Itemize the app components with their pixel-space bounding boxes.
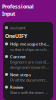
staticText: Engineers are coordinating with xyxy=(10,59,49,65)
staticText: Share with the team on Friday xyxy=(10,90,49,95)
staticText: design and research on the plan xyxy=(10,65,49,70)
staticText: Help me scope the feature set xyxy=(10,41,49,47)
staticText: so that it ships on schedule xyxy=(10,47,49,52)
staticText: OneUIFY xyxy=(5,32,27,39)
staticText: Next steps xyxy=(10,72,31,77)
staticText: Review xyxy=(10,85,23,90)
staticText: assistant xyxy=(10,25,25,30)
staticText: Professional xyxy=(2,3,34,10)
staticText: Draft the document this week xyxy=(10,77,49,83)
staticText: Input xyxy=(2,10,15,17)
staticText: Context xyxy=(10,54,26,59)
